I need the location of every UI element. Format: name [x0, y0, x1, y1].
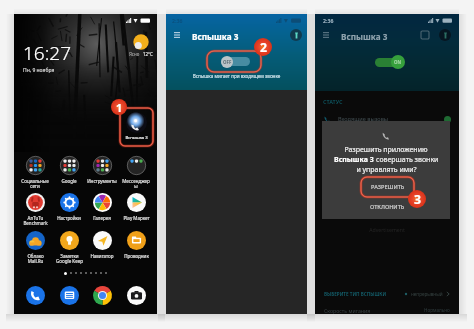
button[interactable]: Меню — [318, 27, 334, 43]
staticText: Инструменты — [87, 178, 117, 184]
staticText: СТАТУС — [323, 98, 343, 105]
staticText: 2:36 — [323, 17, 334, 24]
staticText: Заметки Google Keep — [56, 253, 83, 265]
staticText: Скорость мигания — [324, 307, 371, 314]
staticText: непрерывный — [411, 291, 443, 297]
staticText: 2 — [260, 39, 267, 56]
staticText: AnTuTu Benchmark — [23, 215, 48, 227]
button[interactable] — [375, 58, 404, 67]
staticText: Вспышка 3 — [192, 31, 239, 42]
button[interactable]: Скорость мигания — [324, 304, 450, 314]
staticText: 2:36 — [172, 17, 183, 24]
button[interactable]: Заметки Google Keep — [53, 231, 85, 265]
staticText: OFF — [223, 59, 232, 65]
button[interactable]: Меню — [169, 27, 185, 43]
staticText: ВЫБЕРИТЕ ТИП ВСПЫШКИ — [324, 291, 387, 297]
button[interactable] — [221, 57, 250, 66]
button[interactable]: Галерея — [86, 193, 118, 221]
button[interactable]: Социальные сети — [19, 156, 51, 190]
staticText: Advertisement — [315, 226, 459, 233]
staticText: Нормально — [424, 307, 450, 313]
button[interactable]: Вспышка — [290, 29, 302, 41]
button[interactable]: Google — [53, 156, 85, 184]
button[interactable]: Навигатор — [86, 231, 118, 259]
button[interactable] — [89, 282, 115, 308]
staticText: Облако Mail.Ru — [27, 253, 44, 265]
staticText: РАЗРЕШИТЬ — [371, 183, 405, 191]
button[interactable]: ВЫБЕРИТЕ ТИП ВСПЫШКИ — [324, 288, 450, 300]
button[interactable]: Облако Mail.Ru — [19, 231, 51, 265]
staticText: Социальные сети — [21, 178, 49, 190]
button[interactable] — [56, 282, 82, 308]
button[interactable]: ОТКЛОНИТЬ — [361, 197, 414, 216]
button[interactable]: РАЗРЕШИТЬ — [361, 177, 414, 197]
button[interactable]: Play Маркет — [120, 193, 152, 221]
staticText: Вспышка 3 — [334, 155, 376, 165]
staticText: 1 — [116, 100, 123, 115]
staticText: Настройки — [57, 215, 81, 221]
staticText: 3 — [414, 191, 421, 208]
button[interactable] — [123, 282, 149, 308]
staticText: Галерея — [93, 215, 111, 221]
button[interactable]: Вспышка 3 — [120, 108, 153, 146]
button[interactable]: Ясно — [118, 34, 157, 57]
button[interactable]: Настройки — [53, 193, 85, 221]
staticText: 16:27 — [23, 40, 72, 66]
staticText: Ясно — [129, 51, 140, 57]
staticText: ОТКЛОНИТЬ — [370, 203, 405, 211]
staticText: Разрешить приложению — [344, 145, 428, 155]
button[interactable] — [22, 282, 48, 308]
staticText: Google — [61, 178, 77, 184]
button[interactable]: Мессенджер ы — [120, 156, 152, 190]
button[interactable]: Сохранить — [419, 29, 431, 41]
staticText: Вспышка мигает при входящем звонке — [166, 73, 307, 79]
staticText: Вспышка 3 — [125, 135, 148, 141]
staticText: ON — [394, 59, 402, 65]
staticText: Play Маркет — [123, 215, 150, 221]
button[interactable]: Проводник — [120, 231, 152, 259]
staticText: Проводник — [124, 253, 149, 259]
staticText: Входящие вызовы — [338, 115, 389, 123]
staticText: Мессенджер ы — [122, 178, 150, 190]
staticText: Пн, 9 ноября — [23, 67, 55, 74]
button[interactable]: Инструменты — [86, 156, 118, 184]
staticText: 12°C — [143, 51, 153, 57]
staticText: Вспышка 3 — [341, 31, 388, 42]
staticText: совершать звонки — [376, 155, 439, 165]
button[interactable]: AnTuTu Benchmark — [19, 193, 51, 227]
button[interactable]: Входящие вызовы — [323, 112, 451, 126]
button[interactable]: Вспышка — [439, 29, 451, 41]
staticText: Навигатор — [90, 253, 114, 259]
staticText: и управлять ими? — [356, 165, 417, 175]
